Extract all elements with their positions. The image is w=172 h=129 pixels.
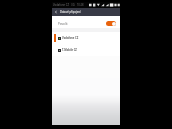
button[interactable]: Vodafone CZ [52,32,120,44]
button[interactable]: T-Mobile CZ [52,44,120,56]
staticText: T-Mobile CZ [62,48,77,52]
staticText: Datové připojení [60,10,81,14]
staticText: Vodafone CZ [62,36,79,40]
button[interactable]: Povolit [52,16,120,28]
staticText: T-Mobile CZ [62,48,77,52]
staticText: Vodafone CZ [62,36,79,40]
button[interactable]: Back [52,8,60,16]
staticText: Vodafone CZ 3G 10:28 [53,3,84,7]
staticText: Povolit [58,22,68,26]
